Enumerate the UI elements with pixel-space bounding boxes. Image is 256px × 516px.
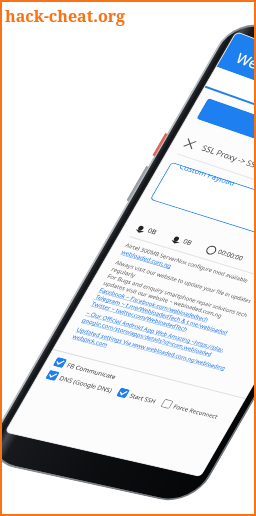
- staticText: Start SSH: [125, 382, 161, 415]
- staticText: webpick.com: [68, 320, 112, 361]
- staticText: updates visit our website ~ webloaded.co…: [98, 239, 228, 360]
- staticText: Airtel 300MB ServerNox configure mod ava…: [120, 201, 254, 325]
- staticText: 00:00:00: [213, 240, 247, 271]
- button[interactable]: Force Reconnect: [157, 378, 224, 441]
- staticText: webloaded.com.ng: [117, 232, 176, 286]
- staticText: ~ Our Official Android App Web Amazing ~…: [79, 261, 231, 402]
- staticText: FB Communicate: [62, 344, 121, 398]
- button[interactable]: Custom Payload: [138, 109, 256, 308]
- button[interactable]: DNS (Google DNS): [41, 346, 118, 418]
- staticText: DNS (Google DNS): [54, 355, 117, 414]
- button[interactable]: [190, 49, 256, 227]
- staticText: hack-cheat.org: [5, 5, 126, 27]
- staticText: Twitter ~ twitter.com/WebloadedTech: [86, 267, 193, 366]
- staticText: WebXode: [228, 31, 256, 104]
- staticText: 0B: [179, 234, 196, 251]
- staticText: Facebook ~ Facebook.com/webloadedtech: [94, 249, 214, 361]
- staticText: Updated settings Via www.webloaded.com.n…: [70, 273, 233, 425]
- button[interactable]: SSL Proxy -> SSL: [179, 87, 256, 252]
- button[interactable]: NORMAL: [200, 15, 256, 204]
- staticText: Telegram ~ t.me/WebloadedTech & t.me/web…: [89, 248, 234, 382]
- staticText: For Bugs and enquiry smartphone repair s…: [101, 225, 253, 366]
- button[interactable]: FB Communicate: [46, 293, 242, 475]
- staticText: google.com/store/apps/details?id=com.web…: [76, 271, 218, 403]
- staticText: Custom Payload: [176, 148, 237, 205]
- button[interactable]: FB Communicate: [49, 335, 122, 403]
- staticText: regularly: [107, 257, 140, 288]
- button[interactable]: Start SSH: [113, 374, 162, 419]
- staticText: 0B: [143, 224, 161, 240]
- button[interactable]: WebXode: [208, 0, 256, 185]
- staticText: Force Reconnect: [169, 386, 223, 437]
- staticText: Always visit our website to update your …: [109, 213, 256, 351]
- staticText: SSL Proxy -> SSL: [196, 125, 256, 189]
